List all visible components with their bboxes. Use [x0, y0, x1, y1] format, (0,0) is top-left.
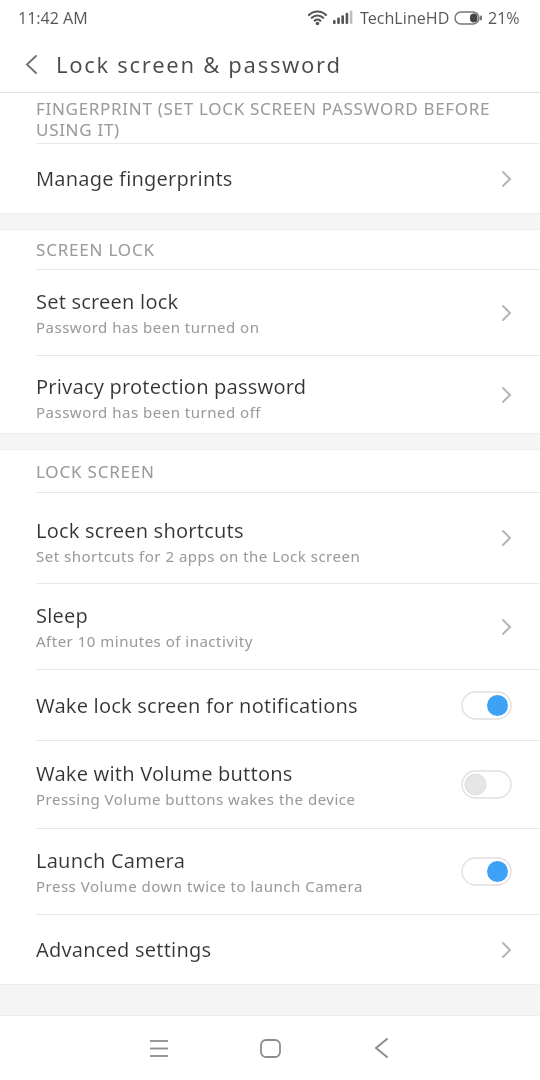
staticText: FINGERPRINT (SET LOCK SCREEN PASSWORD BE… [36, 97, 491, 141]
staticText: Launch Camera [36, 847, 186, 874]
button[interactable] [125, 1023, 193, 1073]
staticText: 21% [488, 7, 520, 29]
staticText: Password has been turned on [36, 317, 260, 337]
button[interactable]: Set screen lock [0, 270, 540, 355]
staticText: Wake with Volume buttons [36, 760, 293, 787]
staticText: Manage fingerprints [36, 165, 233, 192]
staticText: Sleep [36, 602, 88, 629]
staticText: Set screen lock [36, 288, 179, 315]
staticText: LOCK SCREEN [36, 460, 155, 483]
button[interactable]: Sleep [0, 584, 540, 669]
staticText: Set shortcuts for 2 apps on the Lock scr… [36, 546, 361, 566]
button[interactable]: Wake lock screen for notifications [0, 670, 540, 740]
button[interactable]: Manage fingerprints [0, 144, 540, 213]
staticText: Lock screen & password [56, 49, 342, 79]
staticText: Press Volume down twice to launch Camera [36, 876, 363, 896]
button[interactable] [17, 47, 45, 81]
button[interactable] [236, 1023, 304, 1073]
staticText: TechLineHD [360, 7, 450, 29]
button[interactable] [347, 1023, 415, 1073]
staticText: Wake lock screen for notifications [36, 692, 358, 719]
staticText: 11:42 AM [18, 7, 88, 29]
staticText: SCREEN LOCK [36, 238, 155, 261]
button[interactable]: Advanced settings [0, 915, 540, 984]
staticText: Lock screen shortcuts [36, 517, 244, 544]
staticText: Privacy protection password [36, 373, 307, 400]
staticText: After 10 minutes of inactivity [36, 631, 253, 651]
staticText: Password has been turned off [36, 402, 261, 422]
staticText: Pressing Volume buttons wakes the device [36, 789, 356, 809]
staticText: Advanced settings [36, 936, 212, 963]
button[interactable]: Wake with Volume buttons [0, 741, 540, 828]
button[interactable]: Lock screen shortcuts [0, 493, 540, 583]
button[interactable]: Privacy protection password [0, 356, 540, 433]
button[interactable]: Launch Camera [0, 829, 540, 914]
